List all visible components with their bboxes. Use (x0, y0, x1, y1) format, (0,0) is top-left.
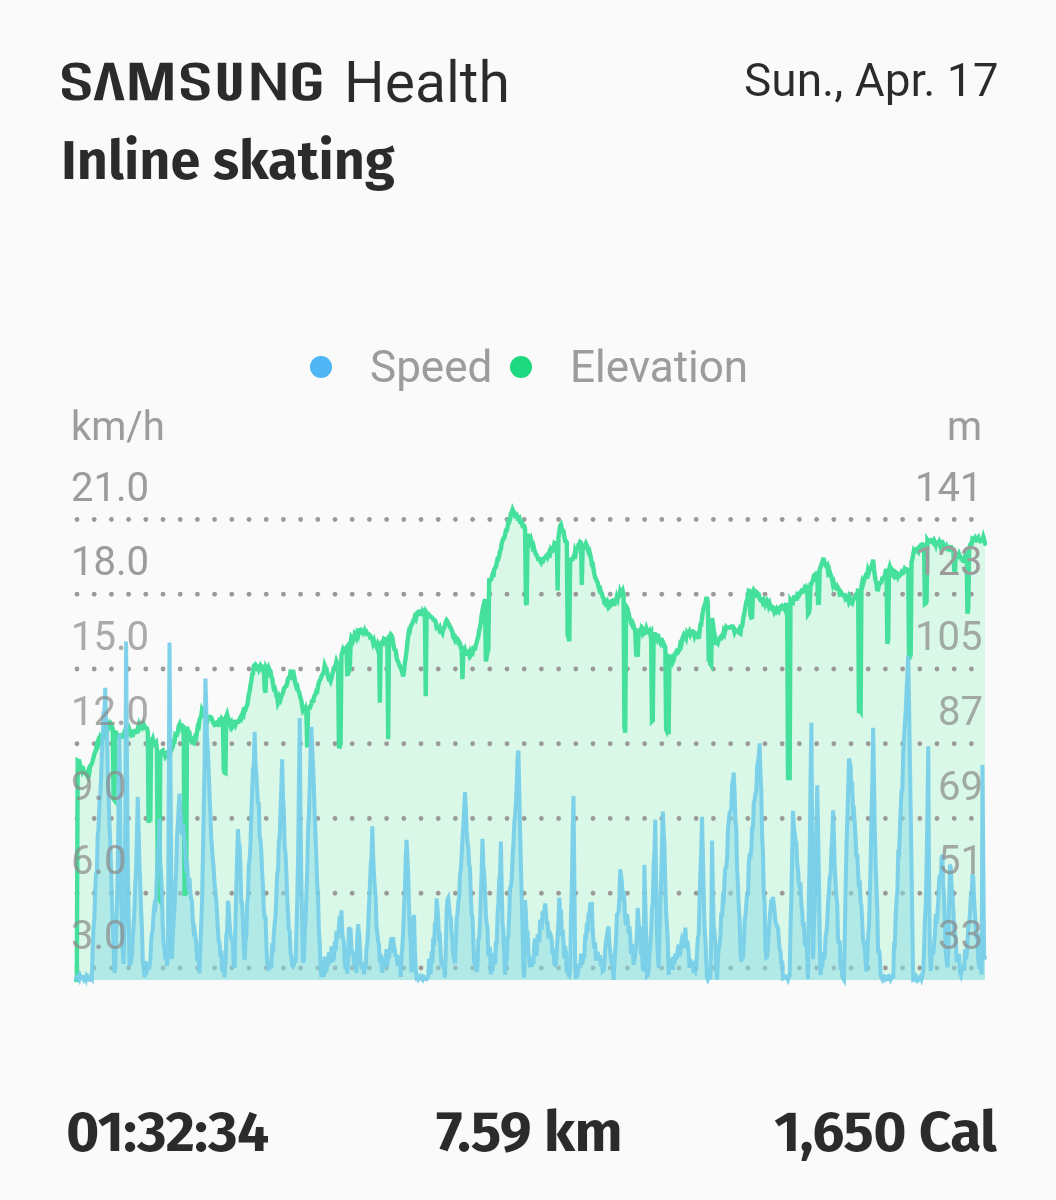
staticText: Sun., Apr. 17 (744, 53, 999, 107)
button[interactable]: Speed (310, 341, 493, 393)
staticText: 7.59 km (436, 1098, 622, 1166)
staticText: Inline skating (61, 129, 395, 194)
staticText: 123 (915, 538, 983, 585)
staticText: 1,650 Cal (774, 1098, 997, 1166)
staticText: 12.0 (71, 688, 149, 735)
staticText: 69 (938, 763, 983, 810)
staticText: 01:32:34 (66, 1098, 269, 1166)
staticText: Speed (370, 341, 493, 393)
staticText: Elevation (570, 341, 749, 393)
button[interactable]: Samsung Health (62, 61, 510, 128)
staticText: 141 (915, 464, 983, 511)
staticText: 15.0 (71, 613, 149, 660)
staticText: 9.0 (71, 763, 127, 810)
staticText: 33 (938, 912, 983, 959)
staticText: km/h (71, 403, 165, 450)
staticText: 51 (938, 837, 983, 884)
staticText: 3.0 (71, 912, 127, 959)
button[interactable]: Elevation (510, 341, 749, 393)
staticText: m (947, 403, 983, 450)
staticText: 87 (938, 688, 983, 735)
staticText: 18.0 (71, 538, 149, 585)
staticText: Health (344, 49, 510, 116)
staticText: 105 (915, 613, 983, 660)
staticText: 21.0 (71, 464, 149, 511)
staticText: 6.0 (71, 837, 127, 884)
